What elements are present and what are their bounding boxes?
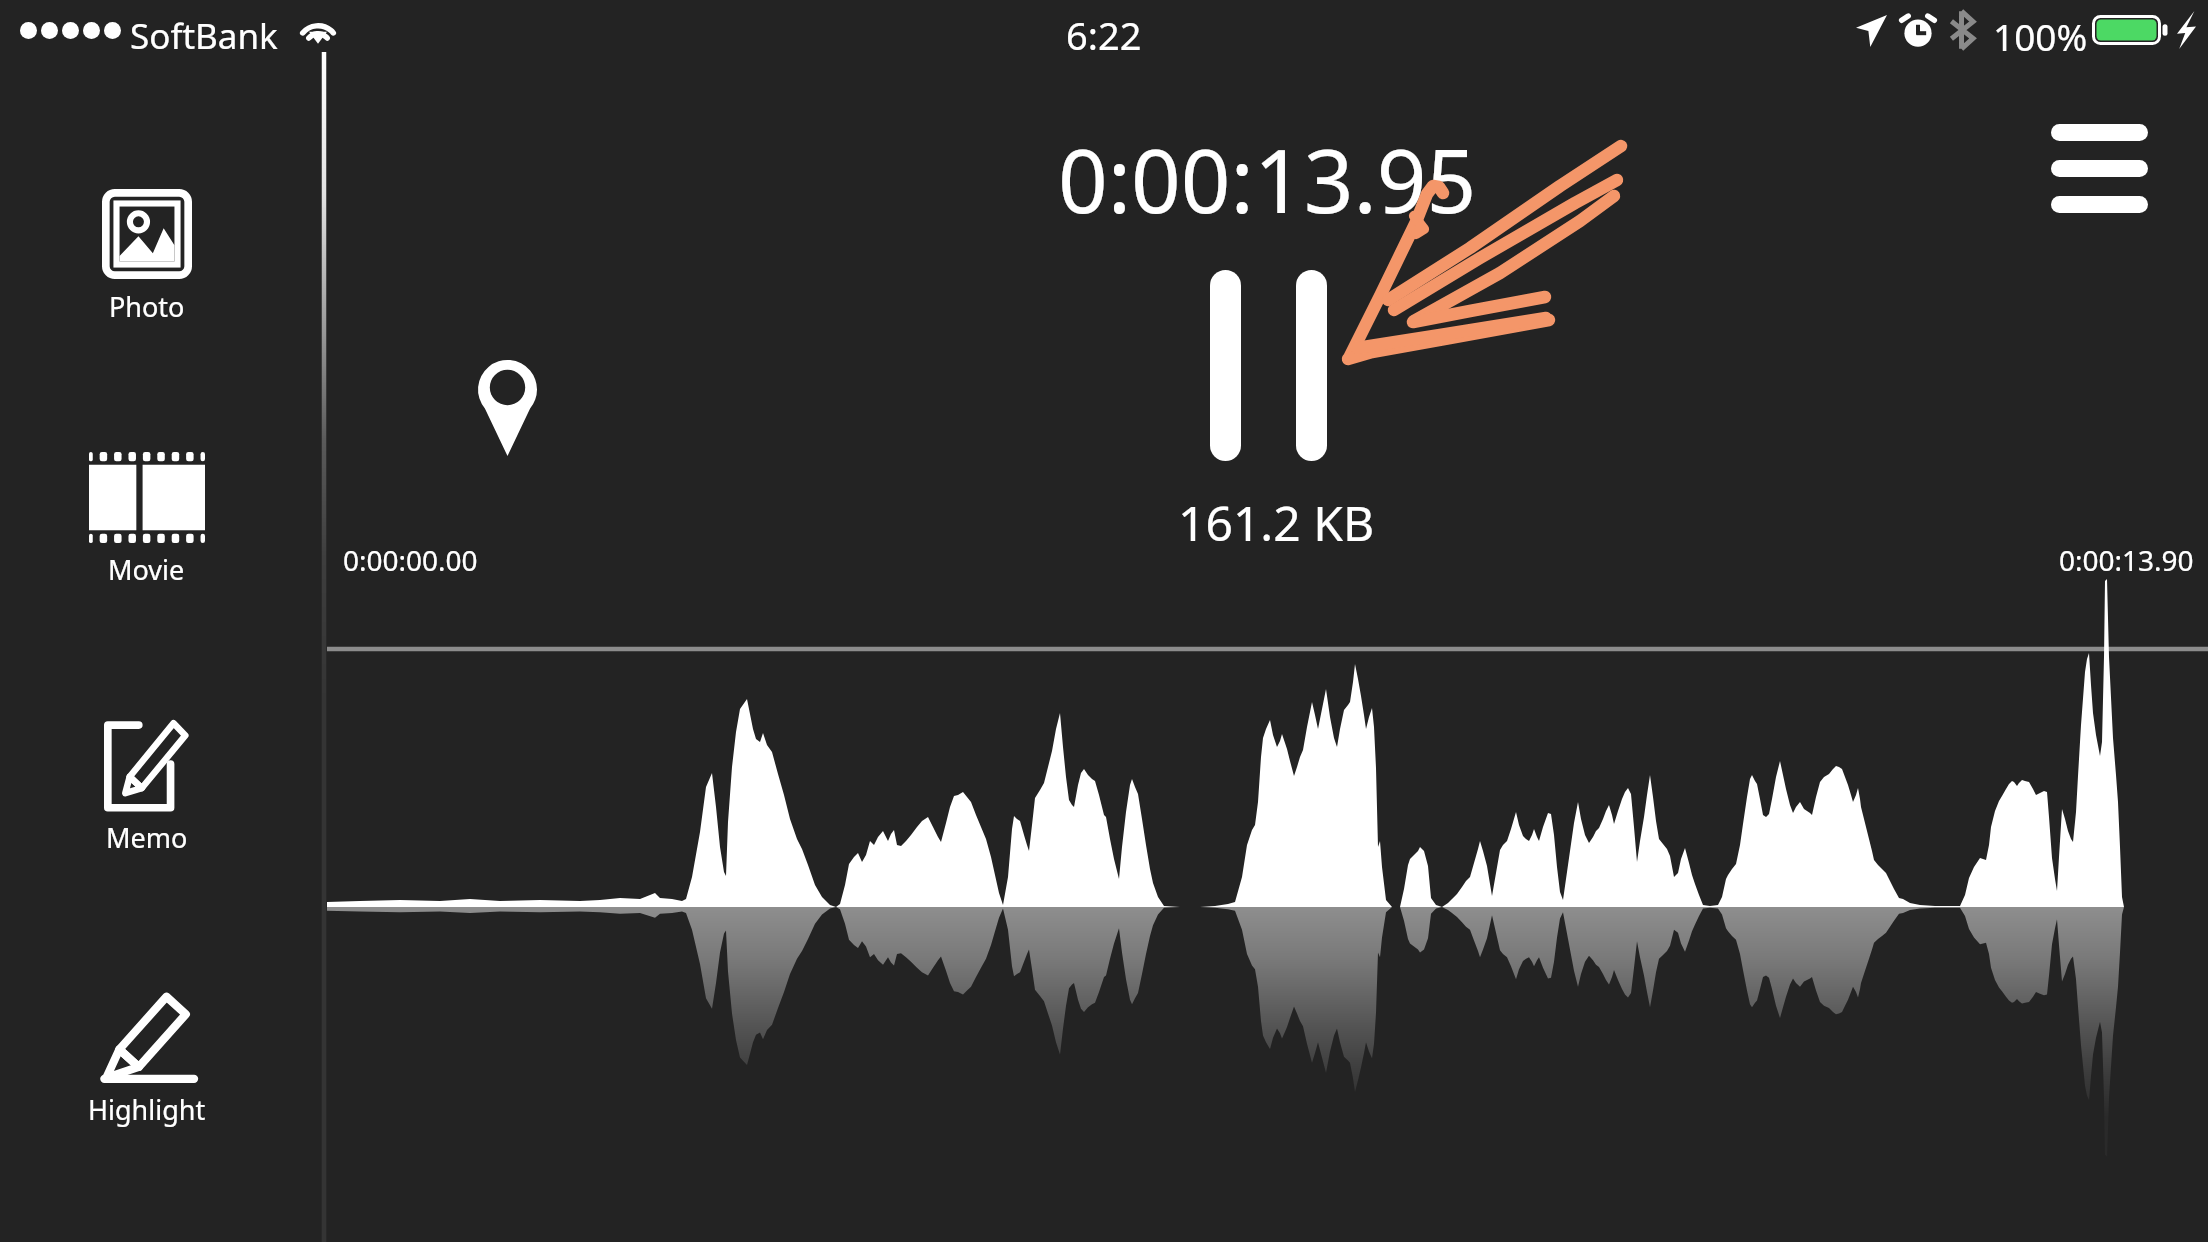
button[interactable]: Location marker — [478, 360, 537, 456]
staticText: Photo — [109, 288, 185, 325]
button[interactable]: Memo — [0, 711, 293, 856]
staticText: 6:22 — [1066, 9, 1142, 61]
staticText: Highlight — [88, 1091, 206, 1128]
staticText: Movie — [108, 551, 185, 588]
other: Memo — [104, 718, 191, 812]
staticText: 100% — [1993, 11, 2088, 61]
other: Highlight — [99, 990, 196, 1085]
button[interactable]: Highlight — [0, 983, 293, 1128]
button[interactable]: Pause — [1210, 270, 1327, 461]
staticText: 0:00:00.00 — [343, 541, 478, 579]
staticText: 161.2 KB — [1178, 490, 1375, 555]
staticText: Memo — [106, 819, 188, 856]
staticText: 0:00:13.90 — [2059, 541, 2194, 579]
staticText: 0:00:13.95 — [1058, 120, 1477, 238]
button[interactable]: Menu — [2051, 124, 2148, 213]
button[interactable]: Movie — [0, 443, 293, 588]
other: Photo — [102, 189, 193, 279]
other: Movie — [89, 452, 205, 543]
button[interactable]: Photo — [0, 180, 293, 325]
staticText: SoftBank — [130, 12, 278, 60]
